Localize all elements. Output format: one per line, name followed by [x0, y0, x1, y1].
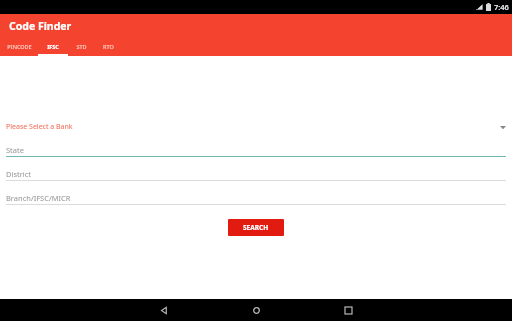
- button[interactable]: State: [6, 143, 506, 157]
- staticText: Branch/IFSC/MICR: [6, 193, 71, 203]
- button[interactable]: PINCODE: [0, 38, 38, 56]
- other: Open bank list: [500, 125, 506, 130]
- button[interactable]: Home: [234, 299, 278, 321]
- staticText: State: [6, 145, 24, 155]
- staticText: SEARCH: [243, 223, 269, 232]
- staticText: PINCODE: [7, 43, 32, 50]
- staticText: Please Select a Bank: [6, 122, 500, 132]
- button[interactable]: Branch/IFSC/MICR: [6, 191, 506, 205]
- staticText: RTO: [103, 43, 114, 50]
- button[interactable]: IFSC: [38, 38, 68, 56]
- staticText: IFSC: [47, 43, 59, 50]
- button[interactable]: Back: [142, 299, 186, 321]
- button[interactable]: SEARCH: [228, 219, 284, 236]
- button[interactable]: Recent apps: [326, 299, 370, 321]
- staticText: STD: [76, 43, 87, 50]
- staticText: 7:46: [494, 2, 509, 12]
- button[interactable]: STD: [68, 38, 95, 56]
- button[interactable]: Please Select a Bank: [6, 120, 506, 134]
- button[interactable]: District: [6, 167, 506, 181]
- button[interactable]: RTO: [95, 38, 122, 56]
- staticText: District: [6, 169, 32, 179]
- staticText: Code Finder: [9, 19, 72, 33]
